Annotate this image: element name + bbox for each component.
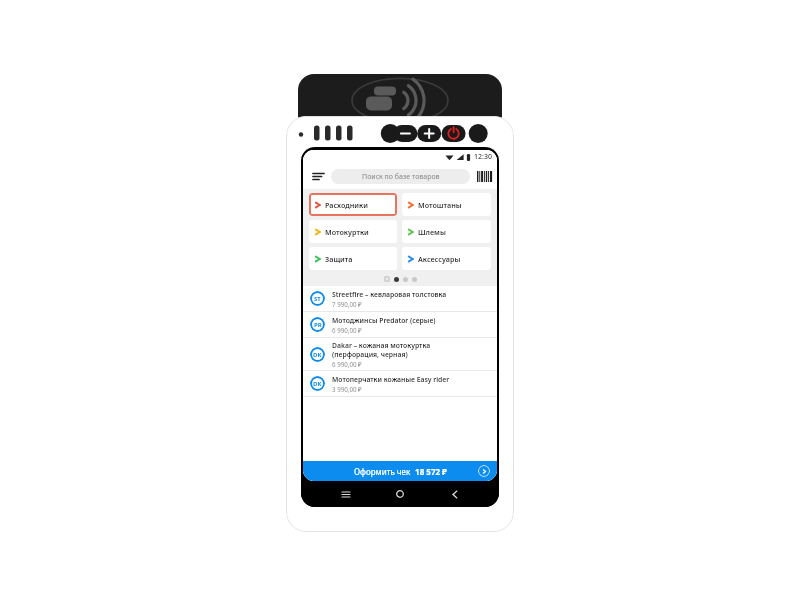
staticText: 12:30 [474, 152, 492, 162]
button[interactable]: ST [303, 286, 497, 311]
staticText: Dakar – кожаная мотокуртка [332, 341, 431, 350]
staticText: Мотоджинсы Predator (серые) [332, 316, 436, 325]
button[interactable]: Recent apps [336, 484, 356, 504]
button[interactable]: Оформить чек [303, 461, 497, 481]
staticText: 6 990,00 ₽ [332, 360, 362, 368]
staticText: DK [313, 351, 322, 359]
staticText: Поиск по базе товаров [362, 172, 440, 182]
button[interactable]: Расходники [309, 193, 397, 216]
staticText: Мотокуртки [325, 227, 369, 237]
button[interactable]: Menu [310, 168, 326, 184]
button[interactable]: Scan barcode [476, 170, 490, 183]
staticText: 18 572 ₽ [413, 466, 447, 477]
staticText: DK [313, 380, 322, 388]
button[interactable]: Аксессуары [402, 247, 491, 270]
staticText: Мотоштаны [418, 200, 462, 210]
button[interactable]: Мотоштаны [402, 193, 491, 216]
button[interactable]: Home [390, 484, 410, 504]
button[interactable]: PR [303, 312, 497, 337]
button[interactable]: Поиск по базе товаров [331, 169, 470, 184]
staticText: Шлемы [418, 227, 446, 237]
staticText: Аксессуары [418, 254, 461, 264]
button[interactable]: Back [445, 484, 465, 504]
staticText: ST [314, 295, 321, 303]
staticText: Защита [325, 254, 353, 264]
button[interactable]: Шлемы [402, 220, 491, 243]
staticText: Streetfire – кевларовая толстовка [332, 290, 447, 299]
staticText: 7 990,00 ₽ [332, 300, 362, 308]
staticText: 3 990,00 ₽ [332, 385, 362, 393]
button[interactable]: DK [303, 338, 497, 370]
button[interactable]: Защита [309, 247, 397, 270]
staticText: Расходники [325, 200, 368, 210]
button[interactable]: DK [303, 371, 497, 396]
staticText: Мотоперчатки кожаные Easy rider [332, 375, 450, 384]
staticText: 6 990,00 ₽ [332, 326, 362, 334]
staticText: Оформить чек [354, 466, 413, 477]
staticText: (перфорация, черная) [332, 350, 408, 359]
button[interactable]: Мотокуртки [309, 220, 397, 243]
staticText: PR [314, 321, 322, 329]
